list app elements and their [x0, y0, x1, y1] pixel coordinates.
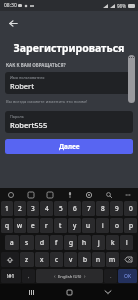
staticText: l: [126, 238, 128, 247]
button[interactable]: 7: [82, 201, 95, 216]
button[interactable]: 9: [110, 201, 123, 216]
staticText: d: [40, 238, 44, 247]
button[interactable]: Recent apps: [23, 284, 39, 300]
button[interactable]: a: [5, 235, 19, 250]
button[interactable]: v: [64, 252, 77, 267]
staticText: t: [59, 221, 62, 230]
button[interactable]: Settings: [83, 189, 94, 200]
button[interactable]: g: [64, 235, 77, 250]
staticText: OK: [124, 273, 132, 280]
staticText: g: [69, 238, 73, 247]
button[interactable]: .: [104, 269, 117, 283]
button[interactable]: i: [96, 218, 109, 233]
staticText: Robert555: [10, 120, 48, 130]
button[interactable]: h: [78, 235, 91, 250]
button[interactable]: t: [54, 218, 67, 233]
staticText: e: [31, 221, 35, 230]
staticText: Пароль: [10, 114, 24, 119]
button[interactable]: ,: [22, 269, 35, 283]
button[interactable]: w: [14, 218, 26, 233]
button[interactable]: 1: [1, 201, 13, 216]
staticText: p: [129, 221, 133, 230]
staticText: .: [110, 272, 112, 280]
staticText: r: [45, 221, 48, 230]
staticText: ,: [28, 272, 30, 280]
button[interactable]: p: [124, 218, 137, 233]
button[interactable]: 2: [14, 201, 26, 216]
button[interactable]: Emoji: [5, 189, 16, 200]
staticText: !#1: [7, 273, 15, 280]
staticText: k: [111, 238, 115, 247]
button[interactable]: 8: [96, 201, 109, 216]
button[interactable]: !#1: [1, 269, 21, 283]
staticText: ‹: [54, 273, 56, 280]
button[interactable]: u: [82, 218, 95, 233]
button[interactable]: Voice input: [64, 189, 75, 200]
staticText: КАК К ВАМ ОБРАЩАТЬСЯ?: [6, 62, 66, 68]
button[interactable]: 0: [124, 201, 137, 216]
staticText: Далее: [59, 142, 80, 151]
staticText: z: [25, 255, 29, 264]
staticText: c: [55, 255, 59, 264]
button[interactable]: b: [78, 252, 91, 267]
button[interactable]: r: [40, 218, 53, 233]
button[interactable]: Back: [100, 284, 116, 300]
button[interactable]: OK: [118, 269, 137, 283]
button[interactable]: 3: [27, 201, 39, 216]
staticText: s: [25, 238, 29, 247]
button[interactable]: n: [92, 252, 105, 267]
staticText: v: [69, 255, 73, 264]
staticText: English (US): [58, 274, 82, 280]
button[interactable]: d: [35, 235, 49, 250]
button[interactable]: ‹: [36, 269, 103, 283]
button[interactable]: Stickers: [44, 189, 55, 200]
button[interactable]: Shift: [1, 252, 19, 267]
staticText: 4: [45, 204, 49, 213]
staticText: 0: [129, 204, 133, 213]
button[interactable]: l: [120, 235, 133, 250]
staticText: n: [96, 255, 101, 264]
button[interactable]: 6: [68, 201, 81, 216]
staticText: 6: [73, 204, 77, 213]
staticText: 3: [31, 204, 35, 213]
staticText: 2: [18, 204, 22, 213]
button[interactable]: Back: [2, 11, 24, 35]
staticText: Зарегистрироваться: [0, 41, 138, 55]
staticText: 8: [101, 204, 105, 213]
staticText: w: [17, 221, 23, 230]
button[interactable]: k: [106, 235, 119, 250]
button[interactable]: Пароль: [5, 111, 133, 133]
button[interactable]: More options: [122, 189, 133, 200]
staticText: 1: [5, 204, 9, 213]
staticText: 9: [115, 204, 119, 213]
button[interactable]: z: [20, 252, 34, 267]
button[interactable]: e: [27, 218, 39, 233]
button[interactable]: Далее: [5, 139, 133, 154]
button[interactable]: GIF: [25, 189, 36, 200]
staticText: i: [102, 221, 104, 230]
button[interactable]: Search: [103, 189, 114, 200]
staticText: f: [55, 238, 58, 247]
button[interactable]: j: [92, 235, 105, 250]
button[interactable]: f: [50, 235, 63, 250]
staticText: h: [82, 238, 87, 247]
staticText: b: [83, 255, 87, 264]
button[interactable]: s: [20, 235, 34, 250]
staticText: 5: [59, 204, 63, 213]
staticText: Robert: [10, 81, 34, 91]
button[interactable]: c: [50, 252, 63, 267]
staticText: u: [86, 221, 91, 230]
staticText: a: [10, 238, 14, 247]
button[interactable]: o: [110, 218, 123, 233]
button[interactable]: q: [1, 218, 13, 233]
button[interactable]: Backspace: [120, 252, 137, 267]
button[interactable]: m: [106, 252, 119, 267]
button[interactable]: y: [68, 218, 81, 233]
button[interactable]: 4: [40, 201, 53, 216]
staticText: x: [40, 255, 44, 264]
staticText: 7: [87, 204, 91, 213]
button[interactable]: Имя пользователя: [5, 72, 133, 94]
button[interactable]: x: [35, 252, 49, 267]
button[interactable]: Home: [61, 284, 77, 300]
button[interactable]: 5: [54, 201, 67, 216]
